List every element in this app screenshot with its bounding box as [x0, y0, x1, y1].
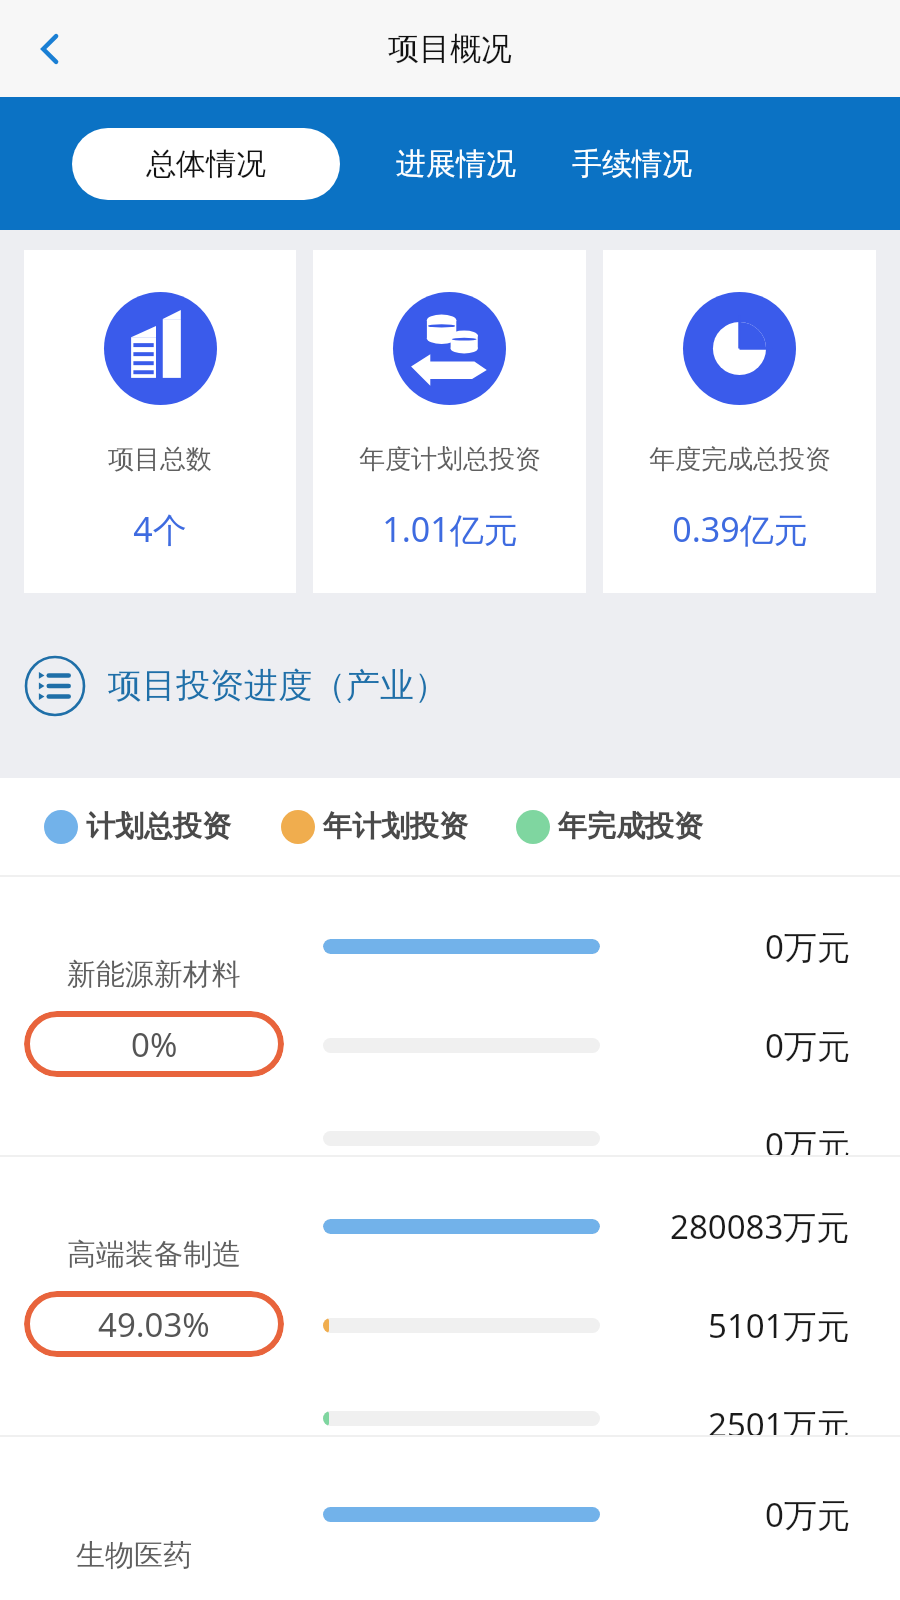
staticText: 项目概况: [388, 29, 512, 68]
staticText: 年完成投资: [558, 808, 703, 845]
button[interactable]: 手续情况: [572, 145, 692, 183]
staticText: 0%: [131, 1022, 178, 1067]
staticText: 新能源新材料: [67, 956, 241, 993]
staticText: 1.01亿元: [382, 506, 518, 552]
staticText: 计划总投资: [86, 808, 231, 845]
staticText: 高端装备制造: [67, 1236, 241, 1273]
staticText: 项目总数: [108, 443, 212, 476]
button[interactable]: 项目总数: [24, 250, 296, 593]
staticText: 年度完成总投资: [649, 443, 831, 476]
staticText: 年计划投资: [323, 808, 468, 845]
staticText: 0.39亿元: [672, 506, 808, 552]
button[interactable]: 新能源新材料: [0, 877, 900, 1155]
button[interactable]: 年度计划总投资: [313, 250, 586, 593]
staticText: 进展情况: [396, 145, 516, 183]
staticText: 项目投资进度（产业）: [108, 664, 448, 707]
button[interactable]: Back: [18, 17, 82, 81]
staticText: 49.03%: [98, 1302, 210, 1347]
staticText: 0万元: [765, 1492, 850, 1537]
staticText: 0万元: [765, 1122, 850, 1155]
button[interactable]: 0万元: [0, 1437, 900, 1600]
staticText: 0万元: [765, 1023, 850, 1067]
button[interactable]: 进展情况: [396, 145, 516, 183]
staticText: 手续情况: [572, 145, 692, 183]
staticText: 年度计划总投资: [359, 443, 541, 476]
button[interactable]: 总体情况: [72, 128, 340, 200]
staticText: 总体情况: [146, 145, 266, 183]
staticText: 4个: [133, 506, 187, 552]
button[interactable]: 高端装备制造: [0, 1157, 900, 1435]
staticText: 2501万元: [708, 1402, 850, 1435]
staticText: 280083万元: [670, 1204, 850, 1248]
staticText: 0万元: [765, 924, 850, 968]
staticText: 生物医药: [76, 1537, 192, 1574]
button[interactable]: 年度完成总投资: [603, 250, 876, 593]
staticText: 5101万元: [708, 1303, 850, 1347]
